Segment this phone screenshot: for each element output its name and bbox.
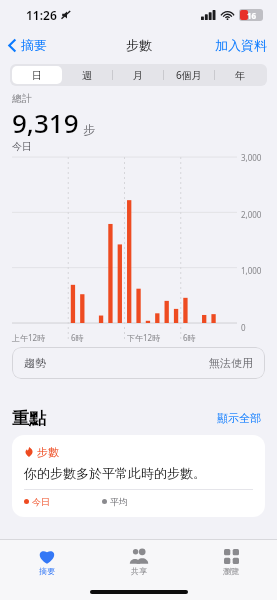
staticText: 月	[133, 69, 143, 82]
button[interactable]: 趨勢	[12, 347, 265, 379]
staticText: 重點	[12, 408, 46, 429]
staticText: 日	[32, 69, 42, 82]
staticText: 無法使用	[209, 356, 253, 370]
button[interactable]: 摘要	[0, 540, 93, 584]
button[interactable]: 月	[112, 66, 163, 84]
staticText: 今日	[12, 140, 32, 153]
button[interactable]: 加入資料	[205, 33, 277, 57]
staticText: 0	[241, 322, 246, 333]
staticText: 今日	[32, 496, 50, 507]
staticText: 共享	[131, 566, 147, 576]
staticText: 步數	[37, 445, 59, 459]
staticText: 3,000	[241, 152, 262, 163]
staticText: 下午12時	[127, 332, 161, 343]
staticText: 瀏覽	[223, 566, 239, 576]
staticText: 1,000	[241, 265, 262, 276]
staticText: 16	[247, 10, 257, 21]
staticText: 9,319	[12, 105, 79, 140]
staticText: 6時	[71, 332, 84, 343]
staticText: 趨勢	[24, 356, 46, 370]
button[interactable]: 顯示全部	[213, 407, 265, 429]
button[interactable]: 共享	[93, 540, 185, 584]
button[interactable]: 年	[214, 66, 265, 84]
button[interactable]: 瀏覽	[185, 540, 277, 584]
staticText: 平均	[110, 496, 128, 507]
staticText: 6個月	[176, 68, 202, 82]
staticText: 年	[235, 69, 245, 82]
staticText: 上午12時	[12, 332, 46, 343]
staticText: 2,000	[241, 209, 262, 220]
button[interactable]: 步數	[12, 435, 265, 517]
staticText: 摘要	[39, 566, 55, 576]
staticText: 你的步數多於平常此時的步數。	[24, 465, 206, 481]
staticText: 摘要	[21, 37, 47, 53]
staticText: 11:26	[26, 7, 57, 23]
staticText: 總計	[12, 92, 32, 105]
button[interactable]: 摘要	[0, 33, 55, 57]
staticText: 步	[83, 122, 95, 137]
button[interactable]: 日	[12, 66, 62, 84]
button[interactable]: 週	[62, 66, 112, 84]
staticText: 步數	[126, 37, 152, 53]
button[interactable]: 6個月	[163, 66, 214, 84]
staticText: 週	[82, 69, 92, 82]
staticText: 6時	[183, 332, 196, 343]
